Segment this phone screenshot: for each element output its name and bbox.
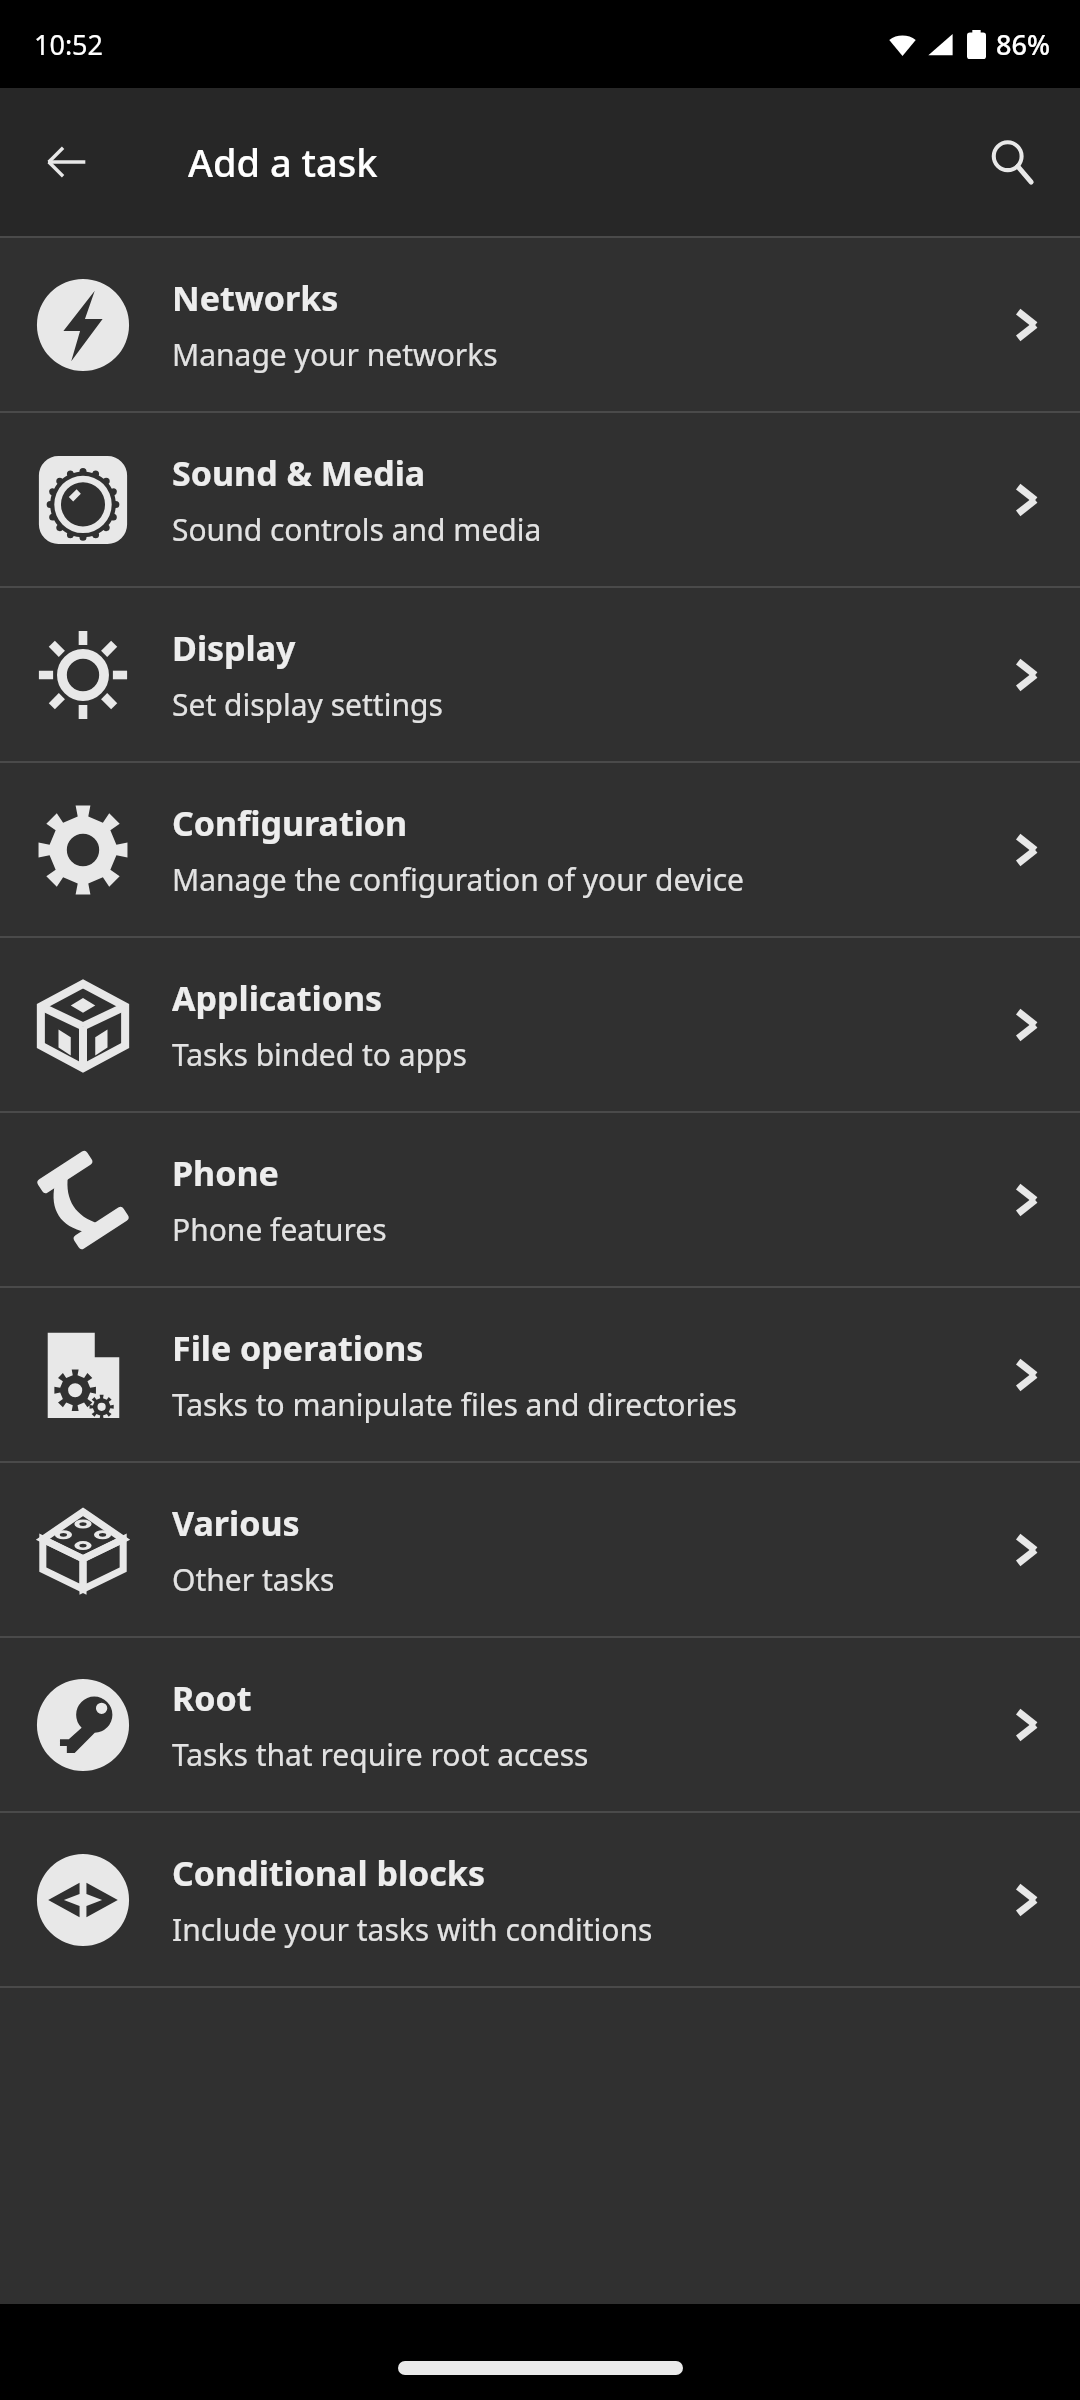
staticText: Add a task bbox=[188, 136, 378, 188]
staticText: 10:52 bbox=[34, 26, 104, 63]
staticText: Sound controls and media bbox=[172, 509, 542, 550]
staticText: Applications bbox=[172, 975, 383, 1021]
button[interactable]: File operations bbox=[0, 1286, 1080, 1461]
staticText: Tasks to manipulate files and directorie… bbox=[172, 1384, 737, 1425]
button[interactable]: Networks bbox=[0, 236, 1080, 411]
staticText: Other tasks bbox=[172, 1559, 335, 1600]
staticText: Tasks binded to apps bbox=[172, 1034, 467, 1075]
button[interactable]: Conditional blocks bbox=[0, 1811, 1080, 1986]
staticText: Root bbox=[172, 1675, 252, 1721]
staticText: Display bbox=[172, 625, 296, 671]
staticText: 86% bbox=[996, 26, 1050, 63]
staticText: Tasks that require root access bbox=[172, 1734, 589, 1775]
staticText: Phone features bbox=[172, 1209, 387, 1250]
button[interactable]: Sound & Media bbox=[0, 411, 1080, 586]
staticText: Various bbox=[172, 1500, 300, 1546]
button[interactable]: Configuration bbox=[0, 761, 1080, 936]
button[interactable]: Display bbox=[0, 586, 1080, 761]
staticText: File operations bbox=[172, 1325, 424, 1371]
staticText: Networks bbox=[172, 275, 339, 321]
staticText: Conditional blocks bbox=[172, 1850, 486, 1896]
button[interactable]: Phone bbox=[0, 1111, 1080, 1286]
button[interactable]: Search bbox=[970, 120, 1054, 204]
button[interactable]: Various bbox=[0, 1461, 1080, 1636]
staticText: Include your tasks with conditions bbox=[172, 1909, 653, 1950]
staticText: Configuration bbox=[172, 800, 408, 846]
button[interactable]: Root bbox=[0, 1636, 1080, 1811]
staticText: Phone bbox=[172, 1150, 279, 1196]
button[interactable]: Back bbox=[24, 120, 108, 204]
staticText: Sound & Media bbox=[172, 450, 426, 496]
button[interactable]: Applications bbox=[0, 936, 1080, 1111]
staticText: Manage the configuration of your device bbox=[172, 859, 745, 900]
staticText: Set display settings bbox=[172, 684, 443, 725]
staticText: Manage your networks bbox=[172, 334, 498, 375]
